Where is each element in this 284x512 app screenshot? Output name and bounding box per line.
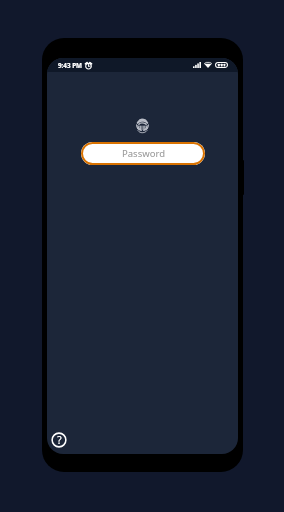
- button[interactable]: Help: [50, 431, 68, 449]
- button[interactable]: Password: [81, 142, 205, 165]
- staticText: 9:43 PM: [58, 61, 83, 70]
- staticText: Password: [122, 147, 165, 160]
- staticText: ?: [57, 433, 62, 447]
